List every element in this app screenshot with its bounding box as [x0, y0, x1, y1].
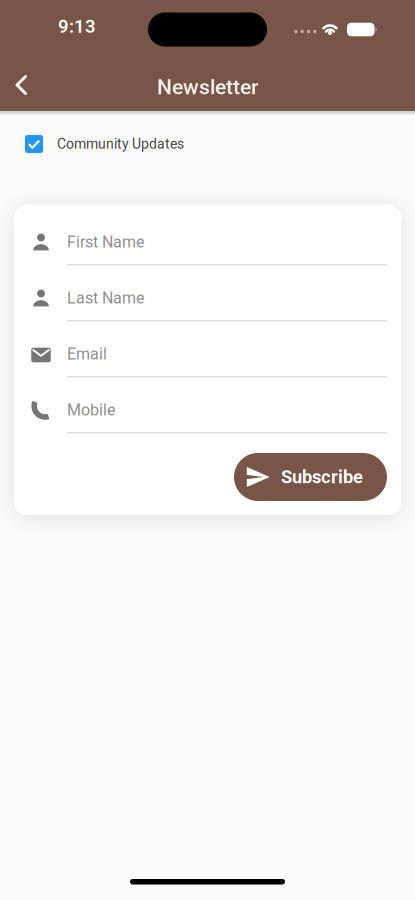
staticText: 9:13: [58, 16, 96, 37]
button[interactable]: Back: [0, 75, 29, 95]
staticText: Community Updates: [57, 136, 184, 152]
staticText: Email: [67, 345, 107, 363]
button[interactable]: Community Updates: [0, 135, 415, 153]
button[interactable]: First Name: [29, 230, 387, 265]
button[interactable]: Email: [29, 342, 387, 377]
button[interactable]: Subscribe: [234, 453, 387, 501]
button[interactable]: Mobile: [29, 398, 387, 433]
staticText: Last Name: [67, 289, 144, 307]
staticText: Newsletter: [157, 75, 258, 99]
staticText: First Name: [67, 233, 144, 251]
staticText: Mobile: [67, 401, 115, 419]
button[interactable]: Last Name: [29, 286, 387, 321]
staticText: Subscribe: [281, 466, 363, 488]
